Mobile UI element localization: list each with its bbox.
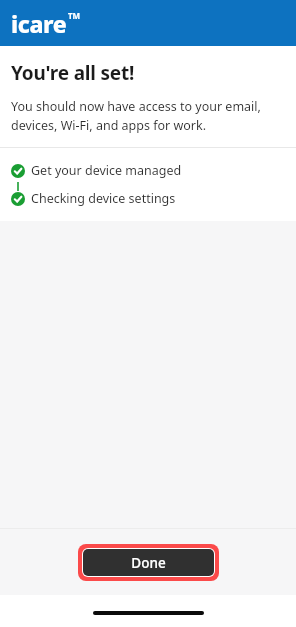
staticText: You should now have access to your email…	[11, 98, 261, 134]
button[interactable]: Completed	[0, 162, 296, 179]
staticText: TM	[68, 10, 81, 21]
staticText: Get your device managed	[31, 162, 182, 179]
button[interactable]: Completed	[0, 190, 296, 207]
staticText: Done	[131, 554, 166, 572]
staticText: icare	[11, 8, 67, 39]
button[interactable]: Done	[83, 549, 214, 576]
other: Completed	[11, 192, 25, 206]
staticText: Checking device settings	[31, 190, 176, 207]
staticText: You're all set!	[11, 60, 135, 86]
other: Completed	[11, 164, 25, 178]
